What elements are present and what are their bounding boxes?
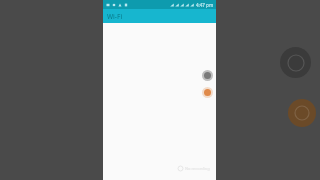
staticText: 4:47 pm xyxy=(196,2,214,8)
button[interactable]: Stop recording xyxy=(202,70,213,81)
button[interactable]: Record xyxy=(202,87,213,98)
staticText: Wi-Fi xyxy=(107,12,123,21)
button[interactable]: Record xyxy=(288,99,316,127)
button[interactable]: Stop recording xyxy=(280,47,311,78)
staticText: No recording xyxy=(185,166,210,171)
